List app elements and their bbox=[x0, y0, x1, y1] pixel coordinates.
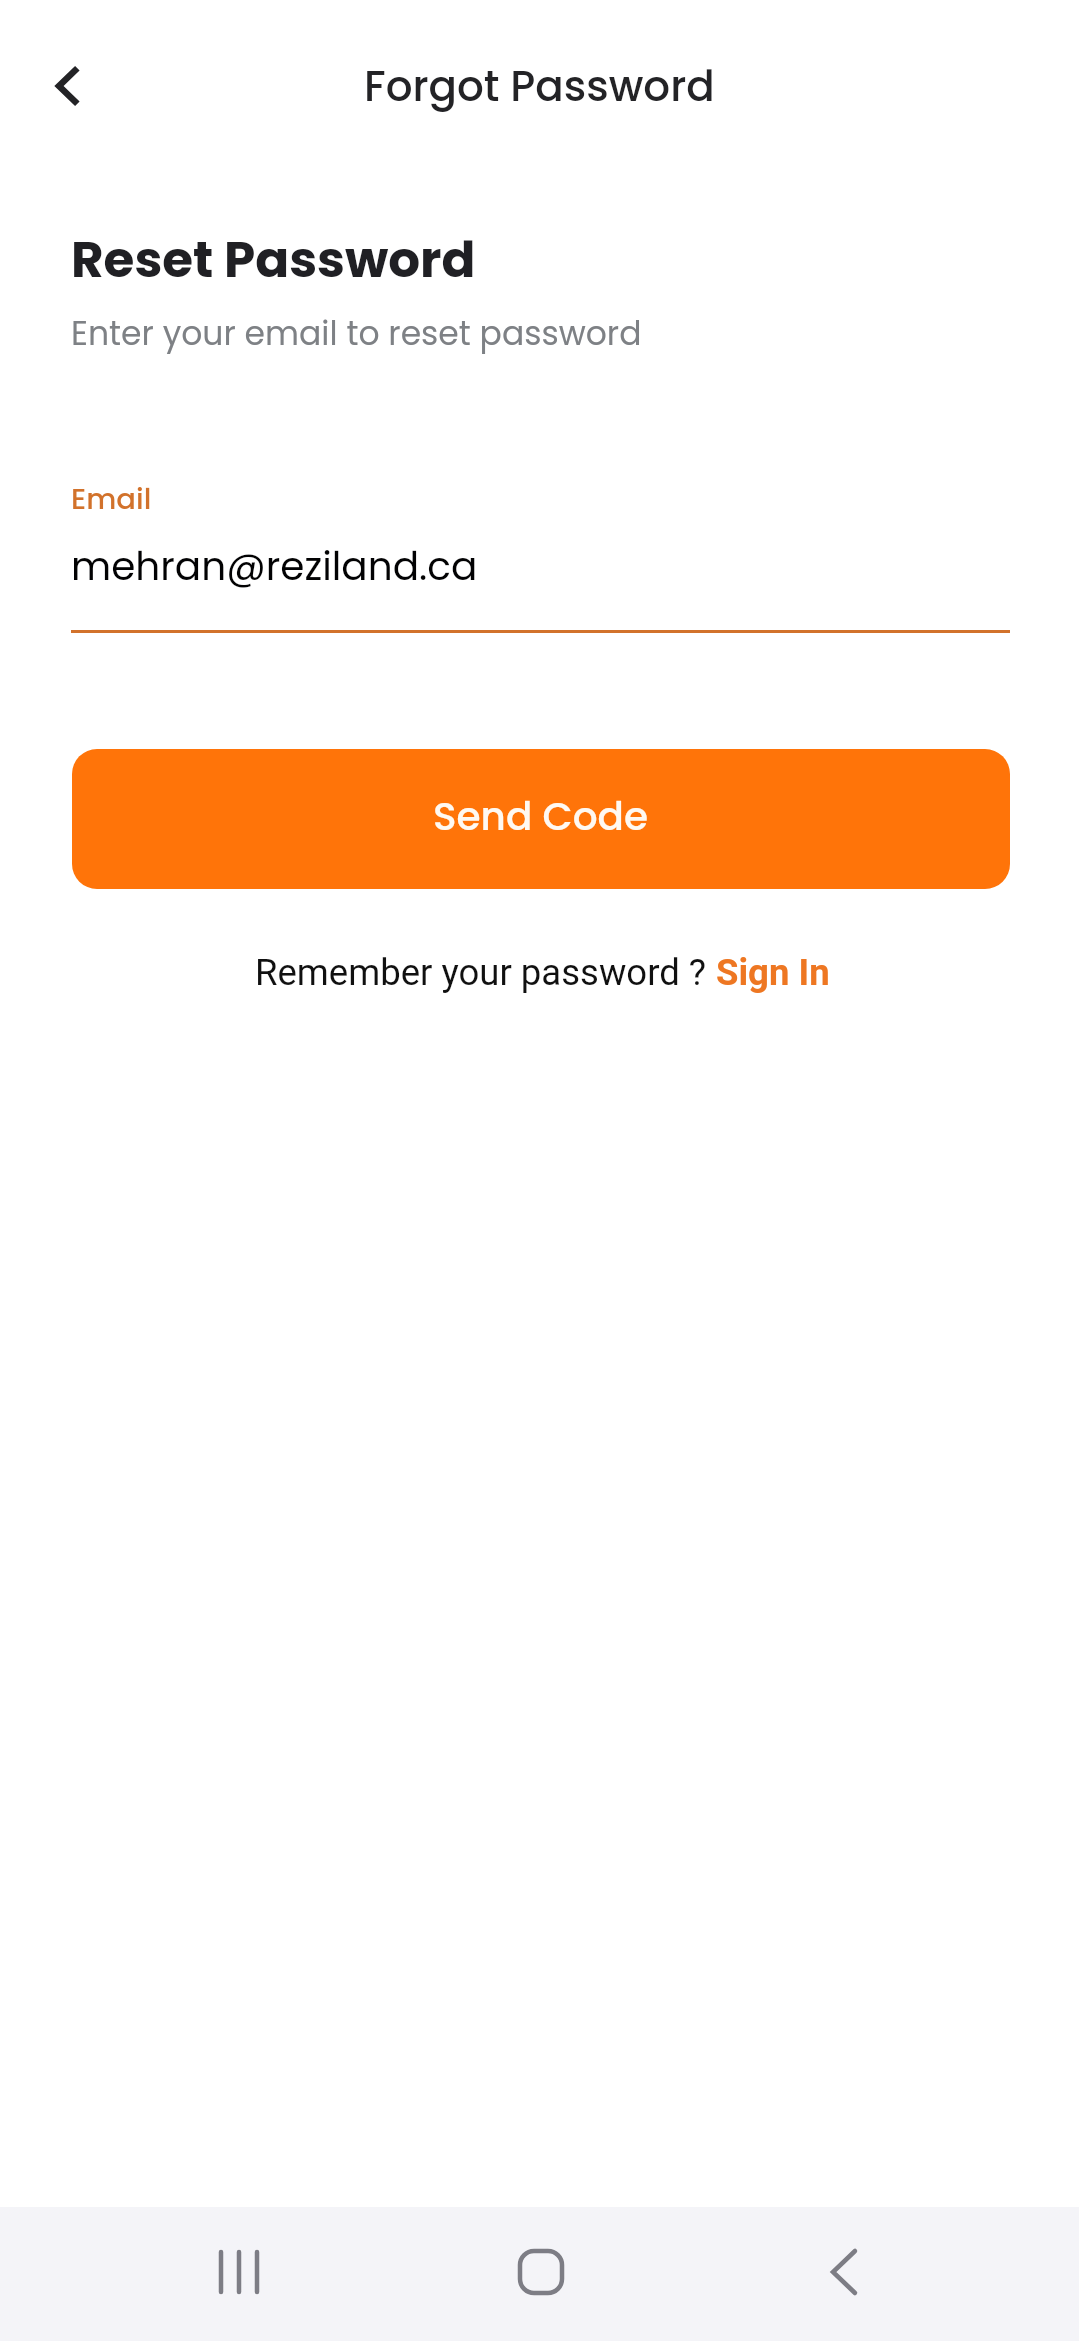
button[interactable]: Back bbox=[794, 2222, 894, 2322]
button[interactable]: Navigate back bbox=[24, 43, 110, 129]
staticText: Enter your email to reset password bbox=[71, 310, 642, 356]
staticText: Send Code bbox=[433, 789, 649, 844]
staticText: Forgot Password bbox=[364, 57, 715, 116]
staticText: Sign In bbox=[716, 951, 830, 994]
staticText: Reset Password bbox=[71, 225, 476, 295]
staticText: mehran@reziland.ca bbox=[71, 539, 478, 594]
staticText: Remember your password ? bbox=[255, 951, 716, 994]
button[interactable]: Home bbox=[491, 2222, 591, 2322]
button[interactable]: Send Code bbox=[72, 749, 1010, 889]
button[interactable]: Remember your password ? bbox=[255, 951, 830, 994]
staticText: Email bbox=[71, 479, 152, 520]
button[interactable]: Recent apps bbox=[189, 2222, 289, 2322]
